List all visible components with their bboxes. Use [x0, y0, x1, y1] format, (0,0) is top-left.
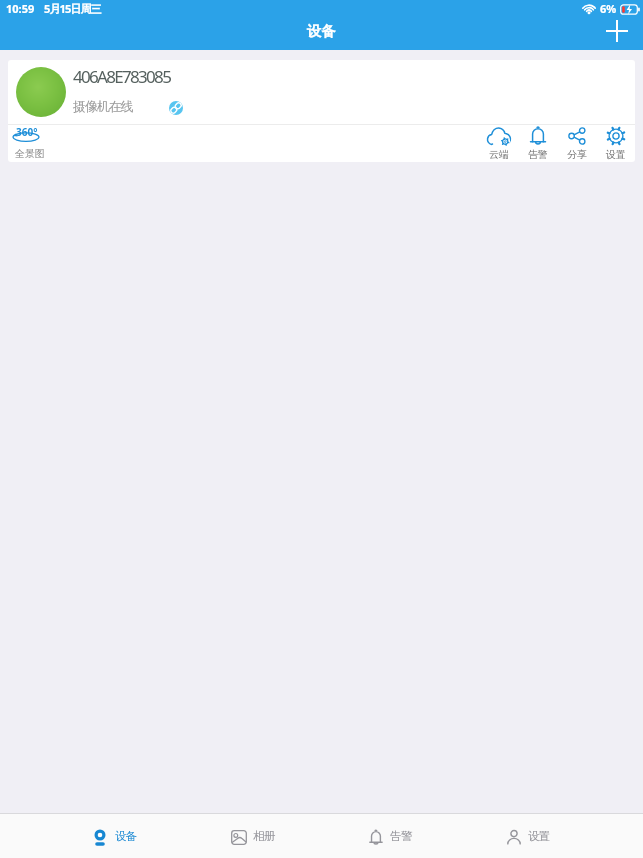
- button[interactable]: [604, 18, 630, 44]
- button[interactable]: 设置: [596, 126, 635, 161]
- staticText: 设备: [307, 22, 336, 40]
- staticText: 5月15日周三: [44, 1, 101, 16]
- staticText: 6%: [600, 1, 617, 16]
- button[interactable]: 360°: [12, 127, 42, 160]
- button[interactable]: 406A8E783085: [8, 60, 635, 124]
- staticText: 10:59: [6, 1, 35, 16]
- staticText: 相册: [253, 829, 275, 843]
- button[interactable]: 告警: [368, 827, 412, 845]
- button[interactable]: 告警: [518, 126, 557, 161]
- staticText: 设置: [606, 148, 626, 161]
- staticText: 分享: [567, 148, 587, 161]
- staticText: 告警: [528, 148, 548, 161]
- button[interactable]: 设备: [93, 827, 137, 845]
- staticText: 摄像机在线: [73, 98, 133, 114]
- staticText: 全景图: [15, 147, 45, 160]
- button[interactable]: 分享: [557, 126, 596, 161]
- staticText: 云端: [489, 148, 509, 161]
- staticText: 设置: [528, 829, 550, 843]
- button[interactable]: 云端: [479, 126, 518, 161]
- staticText: 告警: [390, 829, 412, 843]
- staticText: 360°: [16, 125, 38, 139]
- staticText: 406A8E783085: [73, 65, 171, 88]
- staticText: 设备: [115, 829, 137, 843]
- button[interactable]: 设置: [506, 827, 550, 845]
- button[interactable]: 相册: [231, 827, 275, 845]
